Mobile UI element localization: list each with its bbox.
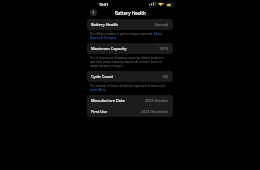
staticText: Maximum Capacity: [91, 46, 127, 51]
button[interactable]: Battery Health: [87, 19, 173, 30]
staticText: 2023 October: [145, 98, 169, 103]
button[interactable]: Back: [90, 9, 97, 16]
button[interactable]: Manufacture Date: [87, 95, 173, 106]
staticText: This is a measure of battery capacity re…: [90, 56, 170, 68]
staticText: 140: [162, 74, 169, 79]
button[interactable]: Cycle Count: [87, 71, 173, 82]
staticText: Battery Health: [115, 10, 146, 16]
staticText: Battery Health: [91, 22, 119, 27]
staticText: First Use: [91, 109, 108, 114]
staticText: Normal: [155, 22, 169, 27]
staticText: This iPhone battery is performing as exp…: [90, 32, 170, 40]
staticText: 13:41: [99, 2, 109, 7]
staticText: The number of times all battery capacity…: [90, 84, 170, 92]
staticText: Manufacture Date: [91, 98, 125, 103]
button[interactable]: First Use: [87, 106, 173, 117]
staticText: Cycle Count: [91, 74, 113, 79]
staticText: 2023 December: [141, 109, 169, 114]
button[interactable]: Maximum Capacity: [87, 43, 173, 54]
staticText: 100%: [159, 46, 169, 51]
